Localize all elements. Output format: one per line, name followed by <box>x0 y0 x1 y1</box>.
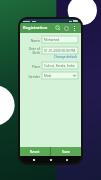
button[interactable]: Recent apps <box>64 157 70 163</box>
staticText: Gender <box>23 74 40 78</box>
button[interactable]: View options <box>62 24 70 32</box>
staticText: Registration <box>23 25 54 31</box>
button[interactable]: Search <box>54 24 62 32</box>
button[interactable]: Male <box>42 72 78 79</box>
button[interactable]: Mohamed <box>42 36 78 43</box>
staticText: Mohamed <box>44 38 60 42</box>
button[interactable]: Calicut, Kerala, India <box>42 62 78 69</box>
staticText: Male <box>44 74 52 78</box>
button[interactable]: Back <box>31 157 37 163</box>
button[interactable]: More options <box>70 24 78 32</box>
staticText: Place <box>23 64 40 68</box>
staticText: Save <box>62 149 70 154</box>
button[interactable]: Change default <box>43 54 78 59</box>
staticText: Change default <box>54 55 77 59</box>
button[interactable]: Home <box>48 157 54 163</box>
staticText: Reset <box>30 149 40 154</box>
staticText: Date of Birth <box>23 46 40 54</box>
button[interactable]: Save <box>51 147 81 156</box>
button[interactable]: Reset <box>20 147 50 156</box>
staticText: Calicut, Kerala, India <box>44 64 75 68</box>
button[interactable]: 01-01-2000 00:00 PM <box>42 47 78 54</box>
staticText: Name <box>23 38 40 42</box>
staticText: 01-01-2000 00:00 PM <box>44 49 76 53</box>
